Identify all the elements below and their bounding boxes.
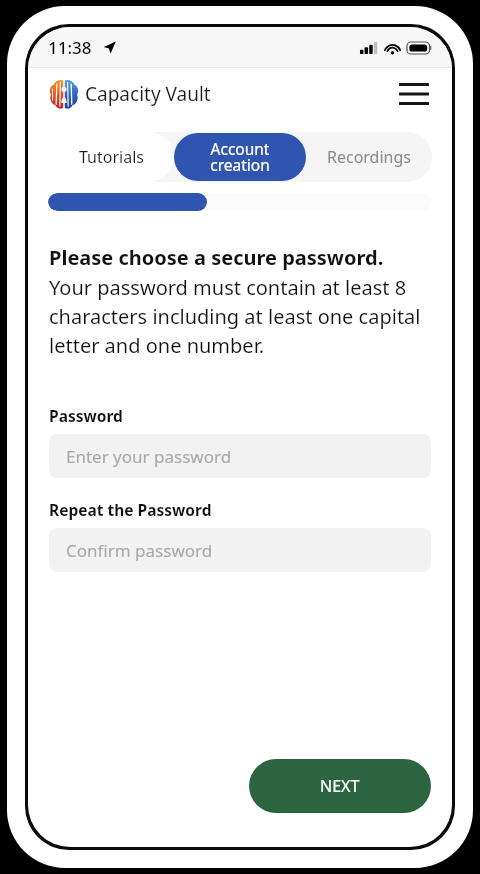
staticText: Repeat the Password xyxy=(49,499,212,520)
staticText: 11:38 xyxy=(48,36,92,59)
staticText: Confirm password xyxy=(66,539,213,562)
button[interactable]: Recordings xyxy=(306,132,432,182)
staticText: Recordings xyxy=(327,146,411,168)
staticText: NEXT xyxy=(320,775,360,797)
staticText: Please choose a secure password. Your pa… xyxy=(49,244,431,359)
staticText: Password xyxy=(49,405,123,426)
button[interactable]: Tutorials xyxy=(48,132,174,182)
button[interactable]: Capacity Vault xyxy=(49,79,211,109)
button[interactable]: Confirm password xyxy=(49,528,431,572)
button[interactable]: NEXT xyxy=(249,759,431,813)
button[interactable]: Open menu xyxy=(392,72,436,116)
staticText: Capacity Vault xyxy=(85,81,211,107)
button[interactable]: Enter your password xyxy=(49,434,431,478)
staticText: Tutorials xyxy=(79,146,144,168)
staticText: Enter your password xyxy=(66,445,232,468)
staticText: Account creation xyxy=(210,138,270,176)
button[interactable]: Account creation xyxy=(174,133,306,181)
